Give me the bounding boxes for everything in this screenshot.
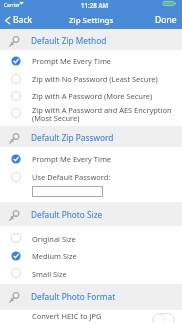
button[interactable]: Zip with No Password (Least Secure) bbox=[0, 70, 182, 88]
button[interactable]: Convert HEIC to JPG bbox=[0, 309, 182, 323]
staticText: Prompt Me Every Time bbox=[32, 154, 112, 164]
button[interactable]: Prompt Me Every Time bbox=[0, 147, 182, 167]
button[interactable]: Small Size bbox=[0, 265, 182, 284]
button[interactable]: Zip with A Password and AES Encryption (… bbox=[0, 105, 182, 126]
staticText: Original Size bbox=[32, 234, 76, 244]
button[interactable]: Zip with A Password (More Secure) bbox=[0, 87, 182, 105]
staticText: 11:28 AM bbox=[81, 1, 109, 9]
button[interactable]: Convert HEIC to JPG bbox=[152, 313, 175, 323]
button[interactable]: Back bbox=[0, 12, 37, 28]
staticText: Medium Size bbox=[32, 251, 77, 261]
staticText: Default Zip Method bbox=[31, 35, 107, 46]
button[interactable]: Use Default Password: bbox=[0, 168, 182, 203]
staticText: Default Zip Password bbox=[31, 132, 114, 143]
button[interactable]: Medium Size bbox=[0, 247, 182, 264]
button[interactable]: Done bbox=[150, 12, 182, 28]
staticText: Zip with No Password (Least Secure) bbox=[32, 74, 158, 84]
staticText: Small Size bbox=[32, 269, 67, 279]
staticText: Prompt Me Every Time bbox=[32, 56, 112, 66]
button[interactable]: Prompt Me Every Time bbox=[0, 50, 182, 70]
staticText: Default Photo Size bbox=[31, 209, 103, 220]
staticText: Convert HEIC to JPG bbox=[32, 311, 102, 321]
staticText: Done bbox=[155, 14, 177, 26]
staticText: Zip with A Password and AES Encryption (… bbox=[32, 105, 172, 123]
button[interactable]: Original Size bbox=[0, 226, 182, 247]
staticText: Back bbox=[13, 14, 33, 26]
staticText: Carrier bbox=[4, 2, 20, 9]
staticText: Use Default Password: bbox=[32, 172, 111, 182]
staticText: Zip with A Password (More Secure) bbox=[32, 91, 153, 101]
staticText: Default Photo Format bbox=[31, 291, 116, 302]
staticText: Zip Settings bbox=[69, 15, 114, 26]
